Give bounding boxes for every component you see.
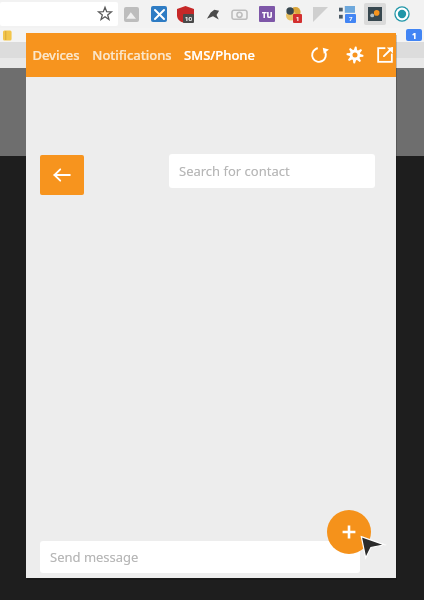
button[interactable]: New conversation: [327, 510, 371, 554]
button[interactable]: Extension: [226, 1, 253, 27]
button[interactable]: Extension: [388, 1, 415, 27]
staticText: Devices: [32, 46, 80, 64]
staticText: Send message: [50, 548, 139, 566]
button[interactable]: Extension: [361, 1, 388, 27]
button[interactable]: Extension: [307, 1, 334, 27]
button[interactable]: Extension: [118, 1, 145, 27]
button[interactable]: SMS/Phone: [184, 46, 255, 64]
button[interactable]: Back: [40, 155, 84, 195]
staticText: 7: [349, 15, 353, 23]
staticText: TU: [262, 9, 273, 20]
staticText: 1: [412, 30, 417, 41]
staticText: 1: [296, 15, 300, 23]
button[interactable]: Extension: [145, 1, 172, 27]
button[interactable]: Search for contact: [169, 154, 375, 188]
staticText: 10: [185, 15, 192, 23]
button[interactable]: Send message: [40, 541, 360, 573]
button[interactable]: Devices: [32, 46, 80, 64]
button[interactable]: Extension: [280, 1, 307, 27]
button[interactable]: Extension: [199, 1, 226, 27]
staticText: SMS/Phone: [184, 46, 255, 64]
button[interactable]: Refresh: [301, 37, 337, 73]
button[interactable]: Extension: [172, 1, 199, 27]
staticText: Search for contact: [179, 162, 290, 180]
button[interactable]: Extension: [253, 1, 280, 27]
button[interactable]: Open in new window: [373, 37, 396, 73]
staticText: Notifications: [92, 46, 172, 64]
button[interactable]: Notifications: [92, 46, 172, 64]
button[interactable]: Settings: [337, 37, 373, 73]
button[interactable]: Extension: [334, 1, 361, 27]
